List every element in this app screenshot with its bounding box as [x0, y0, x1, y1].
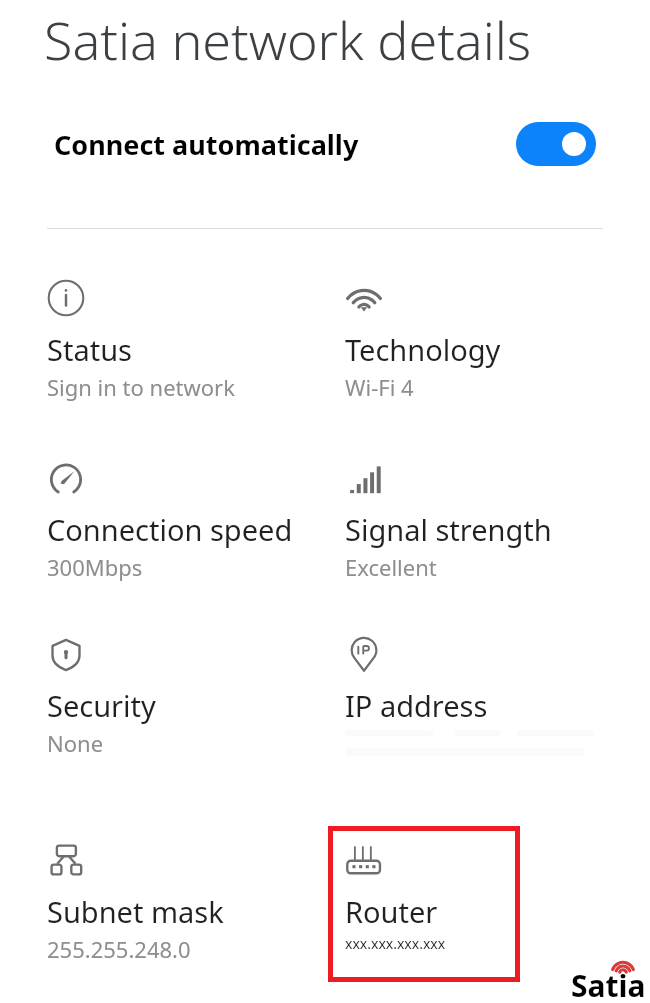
other: IP address [345, 635, 383, 673]
button[interactable]: Subnet mask [47, 841, 337, 964]
other: Security [47, 635, 85, 673]
staticText: 255.255.248.0 [47, 934, 191, 964]
button[interactable]: IP address [345, 635, 635, 728]
staticText: Router [345, 892, 438, 931]
staticText: Connection speed [47, 510, 293, 549]
button[interactable]: Router [345, 841, 635, 953]
staticText: Wi-Fi 4 [345, 372, 414, 402]
staticText: IP address [345, 686, 488, 725]
other: Connection speed [47, 459, 85, 497]
button[interactable]: Signal strength [345, 459, 635, 582]
other: Status [47, 279, 85, 317]
staticText: 300Mbps [47, 552, 143, 582]
staticText: Security [47, 686, 156, 725]
other: Signal strength [345, 459, 383, 497]
button[interactable]: Connect automatically toggle [516, 122, 596, 166]
other: Router [345, 841, 383, 879]
staticText: Signal strength [345, 510, 552, 549]
staticText: xxx.xxx.xxx.xxx [345, 934, 446, 953]
staticText: Connect automatically [54, 126, 359, 163]
other: Technology [345, 279, 383, 317]
staticText: Status [47, 330, 132, 369]
button[interactable]: Technology [345, 279, 635, 402]
button[interactable]: Connection speed [47, 459, 337, 582]
staticText: Subnet mask [47, 892, 224, 931]
staticText: None [47, 728, 104, 758]
button[interactable]: Connect automatically [47, 107, 497, 181]
staticText: Satia network details [44, 4, 532, 75]
staticText: Satia [571, 965, 646, 1003]
staticText: Technology [345, 330, 501, 369]
button[interactable]: Status [47, 279, 337, 402]
other: Subnet mask [47, 841, 85, 879]
button[interactable]: Security [47, 635, 337, 758]
staticText: Sign in to network [47, 372, 235, 402]
staticText: Excellent [345, 552, 437, 582]
